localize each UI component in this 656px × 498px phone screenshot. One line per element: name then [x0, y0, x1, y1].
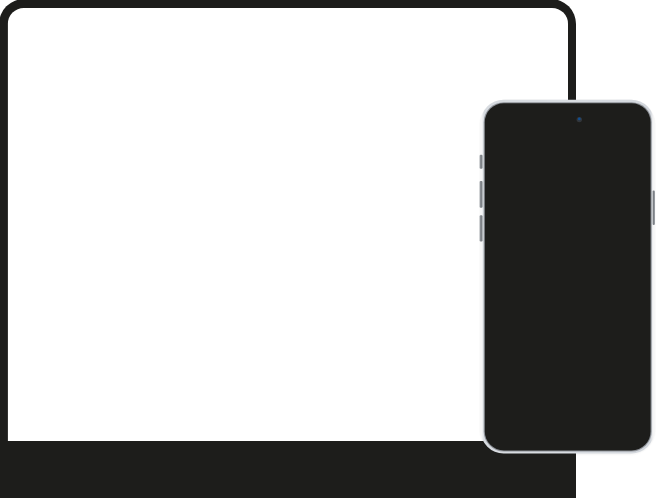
button[interactable]: Volume up [477, 179, 485, 210]
button[interactable]: Ring silent switch [477, 153, 485, 171]
button[interactable]: Power button [650, 188, 656, 227]
button[interactable]: Volume down [477, 213, 485, 244]
button[interactable]: Tablet display [8, 8, 568, 442]
button[interactable]: Phone display [485, 103, 651, 450]
